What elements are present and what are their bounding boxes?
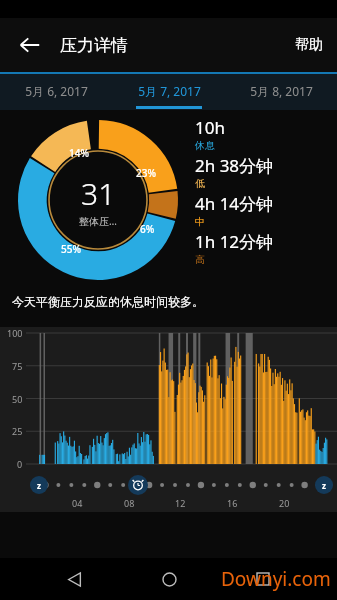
staticText: 压力详情 (60, 35, 128, 56)
staticText: z (37, 480, 41, 491)
staticText: 14% (69, 146, 89, 160)
staticText: 20 (279, 497, 290, 509)
staticText: 08 (124, 497, 135, 509)
staticText: 整体压… (79, 214, 117, 228)
staticText: 休息 (195, 139, 215, 152)
button[interactable]: Recent apps (243, 559, 283, 599)
staticText: 帮助 (295, 36, 323, 54)
staticText: 高 (195, 253, 205, 266)
staticText: 55% (61, 242, 81, 256)
staticText: 10h (195, 116, 225, 139)
staticText: 5月 8, 2017 (250, 83, 313, 99)
staticText: 0 (17, 458, 23, 470)
button[interactable]: 5月 6, 2017 (0, 72, 113, 110)
staticText: Downyi.com (221, 566, 331, 592)
staticText: 中 (195, 215, 205, 228)
staticText: z (322, 480, 326, 491)
staticText: 25 (12, 425, 23, 437)
staticText: 75 (12, 360, 23, 372)
button[interactable]: Back (54, 559, 94, 599)
staticText: 6% (140, 222, 155, 236)
staticText: 2h 38分钟 (195, 154, 274, 177)
staticText: 100 (7, 327, 23, 339)
staticText: 低 (195, 177, 205, 190)
button[interactable]: Back (10, 25, 50, 65)
staticText: 50 (12, 393, 23, 405)
staticText: 23% (136, 166, 156, 180)
button[interactable]: 帮助 (281, 26, 337, 64)
button[interactable]: 5月 8, 2017 (225, 72, 337, 110)
button[interactable]: Sleep end (315, 476, 333, 494)
staticText: 4h 14分钟 (195, 192, 274, 215)
button[interactable]: Home (149, 559, 189, 599)
staticText: 5月 6, 2017 (25, 83, 88, 99)
staticText: 5月 7, 2017 (138, 83, 201, 99)
staticText: 12 (175, 497, 186, 509)
button[interactable]: Alarm (128, 475, 148, 495)
staticText: 16 (227, 497, 238, 509)
staticText: 1h 12分钟 (195, 230, 274, 253)
staticText: 04 (72, 497, 83, 509)
staticText: 31 (81, 173, 116, 214)
button[interactable]: 5月 7, 2017 (113, 72, 225, 110)
staticText: 今天平衡压力反应的休息时间较多。 (12, 294, 204, 309)
button[interactable]: Sleep start (30, 476, 48, 494)
button[interactable]: Overall stress donut chart (18, 120, 178, 280)
